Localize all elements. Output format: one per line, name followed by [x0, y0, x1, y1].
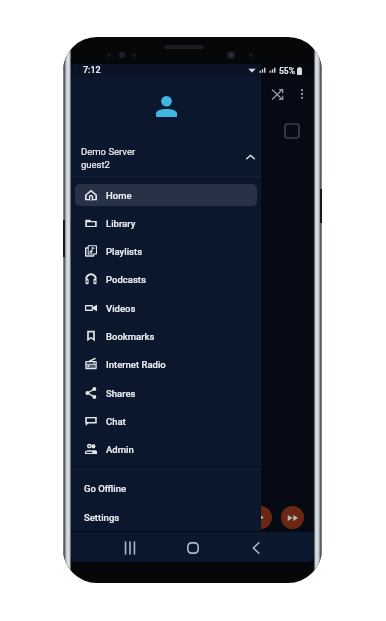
button[interactable]: Collapse account list [241, 148, 259, 166]
button[interactable]: Playlists [75, 240, 257, 262]
button[interactable]: Home [75, 184, 257, 206]
staticText: Playlists [106, 246, 143, 257]
staticText: Admin [106, 444, 134, 455]
staticText: Shares [106, 388, 136, 399]
button[interactable]: Go Offline [71, 474, 261, 502]
staticText: Home [106, 190, 132, 201]
button[interactable]: Back [238, 533, 273, 562]
button[interactable]: Recents [112, 533, 147, 562]
staticText: 55% [279, 66, 295, 76]
button[interactable]: Library [75, 212, 257, 234]
staticText: Chat [106, 416, 126, 427]
button[interactable]: Chat [75, 410, 257, 432]
staticText: Library [106, 218, 136, 229]
button[interactable]: Stop [281, 120, 302, 141]
button[interactable]: Settings [71, 503, 261, 531]
staticText: Videos [106, 303, 136, 314]
button[interactable]: More options [292, 84, 312, 104]
staticText: Internet Radio [106, 359, 166, 370]
button[interactable]: Internet Radio [75, 353, 257, 375]
staticText: Bookmarks [106, 331, 155, 342]
staticText: guest2 [81, 159, 110, 170]
button[interactable]: Bookmarks [75, 325, 257, 347]
staticText: Demo Server [81, 146, 136, 157]
button[interactable]: Next [281, 506, 304, 529]
button[interactable]: Shares [75, 382, 257, 404]
button[interactable]: Shuffle [266, 83, 288, 105]
button[interactable]: Play [249, 506, 272, 529]
staticText: Settings [84, 512, 120, 523]
staticText: 7:12 [83, 65, 101, 76]
button[interactable]: Videos [75, 297, 257, 319]
button[interactable]: Podcasts [75, 268, 257, 290]
staticText: Go Offline [84, 483, 127, 494]
button[interactable]: Admin [75, 438, 257, 460]
button[interactable]: Home [175, 533, 210, 562]
staticText: Podcasts [106, 274, 146, 285]
